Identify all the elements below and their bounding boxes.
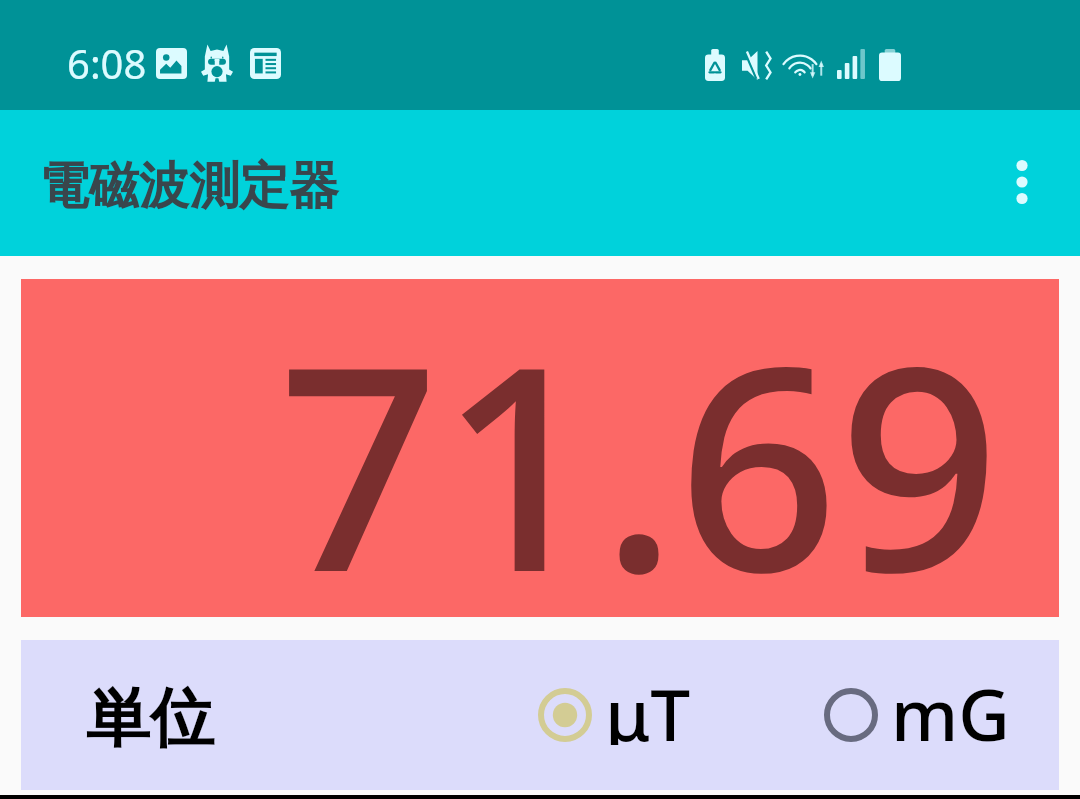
button[interactable]: mG <box>817 675 1007 755</box>
button[interactable]: μT <box>531 675 721 755</box>
button[interactable]: More options <box>978 138 1066 226</box>
staticText: 71.69 <box>278 270 1000 608</box>
staticText: 6:08 <box>67 36 147 90</box>
staticText: 電磁波測定器 <box>39 155 339 218</box>
staticText: mG <box>891 665 1010 745</box>
staticText: 単位 <box>86 678 214 759</box>
staticText: μT <box>605 665 691 745</box>
